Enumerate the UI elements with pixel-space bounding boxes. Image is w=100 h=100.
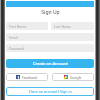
staticText: First Name: [9, 24, 27, 29]
staticText: Password: [9, 46, 25, 51]
button[interactable]: Email: [6, 33, 94, 41]
other: Sign up with Facebook: [16, 75, 20, 79]
button[interactable]: Password: [6, 44, 94, 52]
staticText: Have an account? Sign in: [29, 89, 72, 94]
button[interactable]: Create an Account: [6, 59, 94, 68]
button[interactable]: Last Name: [51, 22, 94, 30]
button[interactable]: Have an account? Sign in: [6, 87, 94, 96]
button[interactable]: First Name: [6, 22, 48, 30]
other: Sign up with Google: [64, 75, 68, 79]
staticText: Google: [70, 75, 82, 80]
staticText: Facebook: [22, 75, 38, 80]
staticText: Create an Account: [33, 61, 68, 66]
staticText: Email: [9, 35, 18, 40]
button[interactable]: Sign up with Facebook: [6, 73, 48, 81]
button[interactable]: Sign up with Google: [52, 73, 94, 81]
staticText: Sign Up: [41, 9, 60, 16]
staticText: Last Name: [54, 24, 71, 29]
